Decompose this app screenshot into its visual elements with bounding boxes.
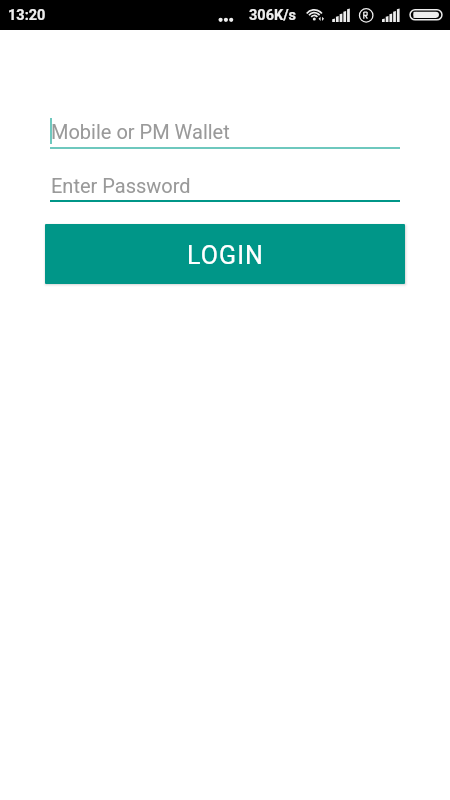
button[interactable]: Mobile or PM Wallet — [50, 120, 400, 150]
staticText: LOGIN — [187, 241, 265, 270]
staticText: Enter Password — [51, 174, 191, 197]
other: System status icons — [0, 0, 450, 30]
button[interactable]: LOGIN — [45, 224, 405, 284]
staticText: 13:20 — [8, 7, 46, 24]
staticText: 306K/s — [249, 7, 297, 24]
staticText: Mobile or PM Wallet — [51, 120, 230, 143]
button[interactable]: Enter Password — [50, 174, 400, 202]
